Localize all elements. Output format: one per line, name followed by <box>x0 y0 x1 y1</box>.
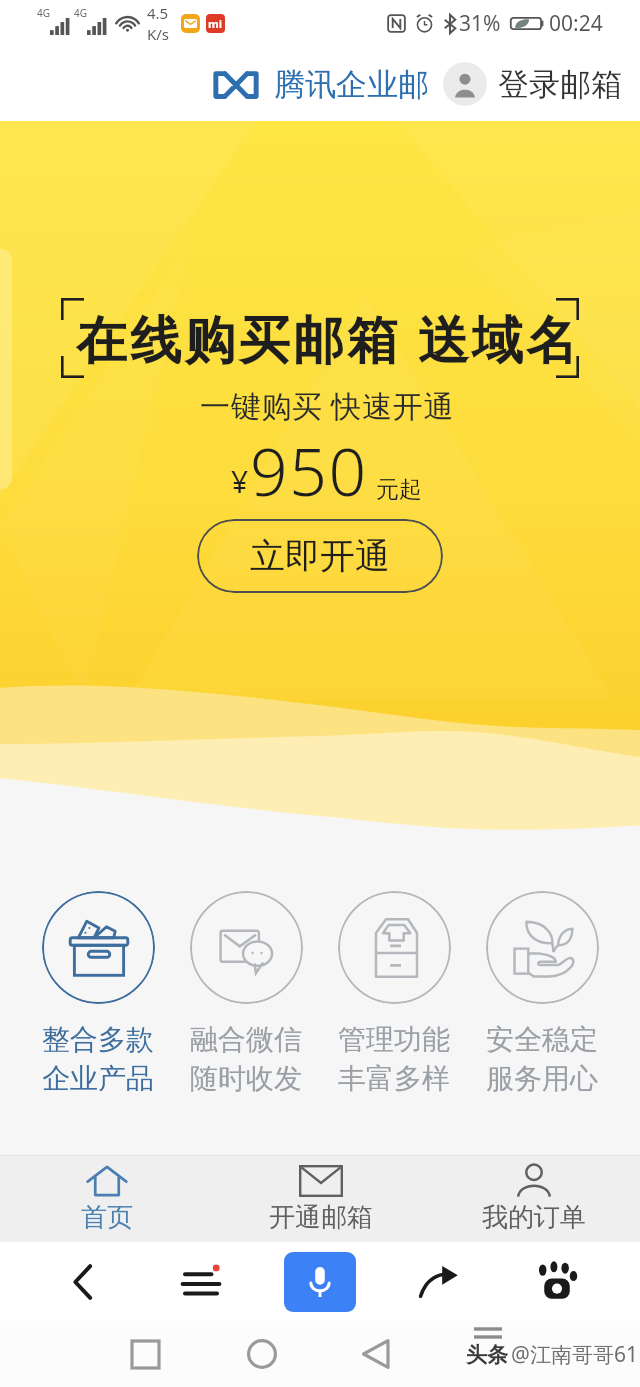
button[interactable]: 融合微信 <box>172 891 320 1096</box>
staticText: 管理功能 <box>338 1022 450 1057</box>
staticText: 在线购买邮箱 送域名 <box>76 303 581 373</box>
staticText: 00:24 <box>549 9 603 38</box>
staticText: 950 <box>250 425 368 515</box>
button[interactable]: 立即开通 <box>197 519 443 593</box>
button[interactable]: 登录邮箱 <box>443 62 622 106</box>
staticText: 腾讯企业邮 <box>274 65 429 104</box>
button[interactable]: 我的订单 <box>452 1158 616 1240</box>
staticText: 安全稳定 <box>486 1022 598 1057</box>
staticText: 整合多款 <box>42 1022 154 1057</box>
staticText: 一键购买 快速开通 <box>200 385 455 426</box>
staticText: 4G <box>74 6 87 20</box>
staticText: 4G <box>37 6 50 20</box>
staticText: 企业产品 <box>42 1061 154 1096</box>
button[interactable]: Voice search <box>284 1252 356 1312</box>
staticText: 4.5 <box>147 3 169 23</box>
staticText: 我的订单 <box>482 1201 586 1234</box>
staticText: 首页 <box>81 1201 133 1234</box>
staticText: 立即开通 <box>250 534 390 578</box>
staticText: 登录邮箱 <box>498 65 622 104</box>
staticText: 头条 <box>466 1342 508 1368</box>
button[interactable]: Share <box>403 1246 475 1318</box>
button[interactable]: 管理功能 <box>320 891 468 1096</box>
staticText: ¥ <box>231 461 249 502</box>
button[interactable]: Back <box>47 1246 119 1318</box>
staticText: 开通邮箱 <box>269 1201 373 1234</box>
staticText: @江南哥哥6116 <box>511 1340 640 1369</box>
button[interactable]: 首页 <box>51 1159 163 1240</box>
staticText: 融合微信 <box>190 1022 302 1057</box>
staticText: mi <box>208 16 223 31</box>
staticText: 服务用心 <box>486 1061 598 1096</box>
button[interactable]: Back <box>351 1330 399 1378</box>
button[interactable]: Recents <box>121 1330 169 1378</box>
button[interactable]: 腾讯企业邮 <box>212 65 429 104</box>
button[interactable]: Menu <box>165 1246 237 1318</box>
button[interactable]: Home <box>238 1330 286 1378</box>
button[interactable]: 安全稳定 <box>468 891 616 1096</box>
staticText: 元起 <box>376 475 422 504</box>
button[interactable]: Baidu <box>521 1246 593 1318</box>
staticText: K/s <box>147 24 170 44</box>
staticText: 随时收发 <box>190 1061 302 1096</box>
staticText: 丰富多样 <box>338 1061 450 1096</box>
button[interactable]: 整合多款 <box>24 891 172 1096</box>
button[interactable]: 开通邮箱 <box>239 1159 403 1240</box>
staticText: 31% <box>459 9 501 38</box>
